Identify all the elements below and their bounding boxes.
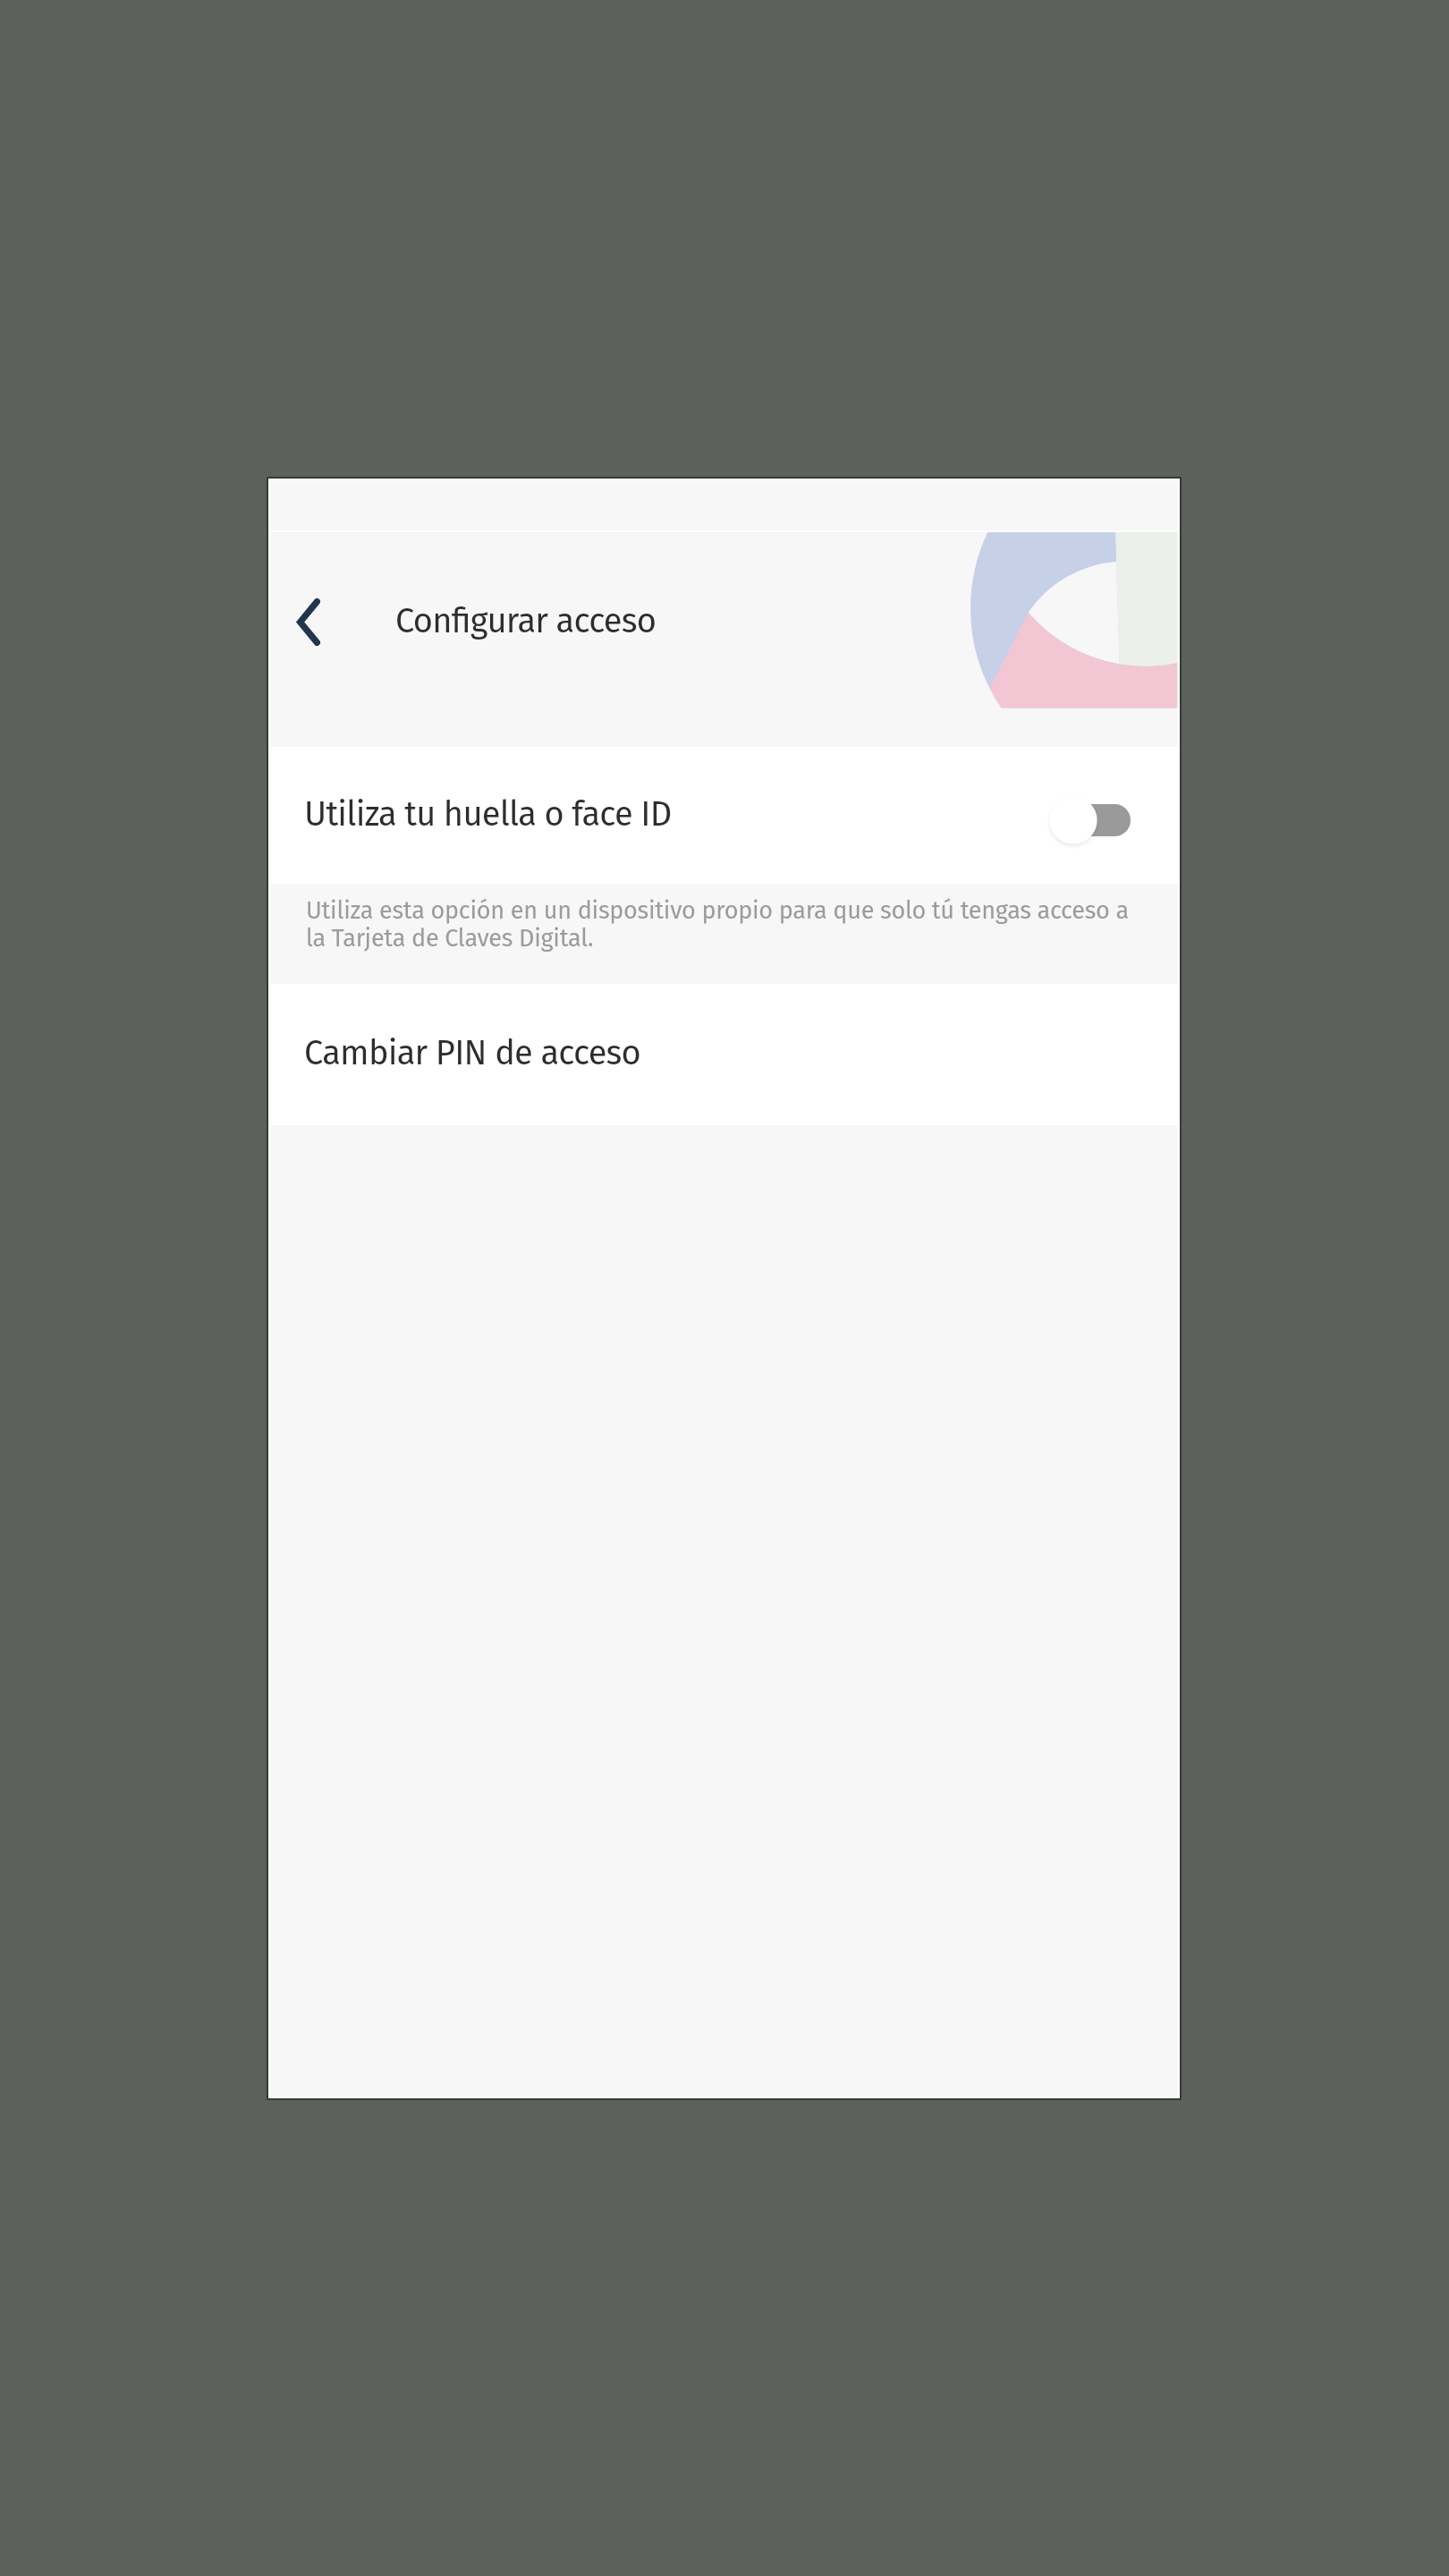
- staticText: Configurar acceso: [395, 600, 657, 641]
- button[interactable]: Back: [275, 589, 342, 655]
- staticText: Utiliza esta opción en un dispositivo pr…: [306, 896, 1133, 953]
- button[interactable]: Utiliza tu huella o face ID: [268, 747, 1180, 884]
- button[interactable]: Cambiar PIN de acceso: [268, 984, 1180, 1125]
- staticText: Cambiar PIN de acceso: [304, 1032, 641, 1073]
- staticText: Utiliza tu huella o face ID: [304, 793, 672, 835]
- button[interactable]: Activar huella o face ID: [1040, 787, 1133, 853]
